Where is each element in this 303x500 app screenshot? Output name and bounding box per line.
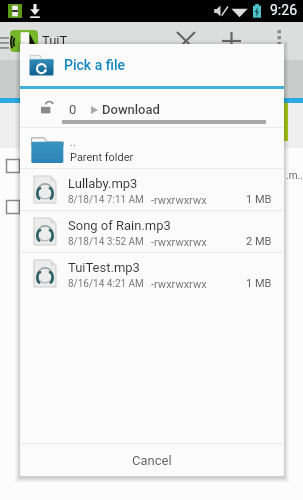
button[interactable]: Close xyxy=(177,32,195,50)
button[interactable]: Song of Rain.mp3 xyxy=(20,211,284,252)
button[interactable]: TuiTest.mp3 xyxy=(20,253,284,294)
button[interactable]: Add xyxy=(222,32,241,50)
staticText: 2 MB xyxy=(246,235,272,248)
staticText: Download xyxy=(102,102,160,117)
staticText: 0 xyxy=(69,102,77,117)
staticText: -rwxrwxrwx xyxy=(151,236,207,249)
staticText: 1 MB xyxy=(246,193,272,206)
staticText: Song of Rain.mp3 xyxy=(68,218,171,233)
staticText: TuiT xyxy=(42,33,68,48)
staticText: 8/18/14 3:52 AM xyxy=(68,236,144,248)
staticText: -rwxrwxrwx xyxy=(151,194,207,207)
staticText: Pick a file xyxy=(64,57,125,73)
staticText: TuiTest.mp3 xyxy=(68,260,140,275)
staticText: .. xyxy=(70,136,76,149)
button[interactable]: .. xyxy=(20,128,284,168)
button[interactable]: Cancel xyxy=(20,444,284,476)
button[interactable]: Lullaby.mp3 xyxy=(20,169,284,210)
staticText: Cancel xyxy=(132,453,172,468)
staticText: 9:26 xyxy=(270,2,297,18)
button[interactable]: Unlock xyxy=(41,101,54,114)
staticText: .m... xyxy=(286,170,303,182)
staticText: 8/16/14 4:21 AM xyxy=(68,278,144,290)
staticText: Parent folder xyxy=(70,151,134,164)
staticText: 8/18/14 7:11 AM xyxy=(68,194,144,206)
staticText: -rwxrwxrwx xyxy=(151,278,207,291)
staticText: Lullaby.mp3 xyxy=(68,176,138,191)
staticText: 1 MB xyxy=(246,277,272,290)
button[interactable]: Menu xyxy=(0,37,9,50)
button[interactable]: Pick a file xyxy=(29,44,284,86)
button[interactable]: TuiT app icon xyxy=(10,30,38,52)
button[interactable]: More options xyxy=(276,29,284,47)
